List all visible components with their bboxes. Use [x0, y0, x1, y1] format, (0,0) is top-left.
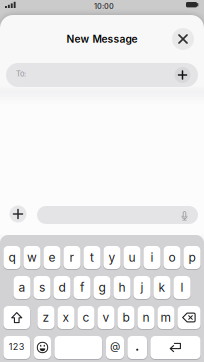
staticText: q: [8, 250, 15, 265]
button[interactable]: i: [143, 246, 160, 269]
button[interactable]: Numbers: [3, 336, 30, 359]
button[interactable]: s: [33, 276, 50, 299]
button[interactable]: h: [113, 276, 130, 299]
staticText: i: [150, 250, 153, 265]
button[interactable]: Apps: [9, 205, 26, 222]
staticText: o: [168, 250, 175, 265]
staticText: j: [140, 280, 143, 295]
button[interactable]: o: [163, 246, 180, 269]
staticText: p: [188, 250, 195, 265]
button[interactable]: q: [3, 246, 20, 269]
button[interactable]: n: [137, 306, 154, 329]
staticText: w: [27, 250, 37, 265]
button[interactable]: Delete: [177, 306, 200, 329]
staticText: c: [82, 310, 89, 325]
button[interactable]: c: [77, 306, 94, 329]
staticText: t: [90, 250, 94, 265]
button[interactable]: f: [73, 276, 90, 299]
staticText: a: [18, 280, 25, 295]
staticText: k: [158, 280, 165, 295]
staticText: r: [69, 250, 74, 265]
button[interactable]: Space: [54, 336, 102, 359]
button[interactable]: Close: [172, 28, 194, 50]
staticText: z: [42, 310, 49, 325]
staticText: h: [118, 280, 125, 295]
button[interactable]: u: [123, 246, 140, 269]
button[interactable]: t: [83, 246, 100, 269]
button[interactable]: Emoji: [34, 336, 51, 359]
button[interactable]: k: [153, 276, 170, 299]
staticText: x: [62, 310, 69, 325]
button[interactable]: m: [157, 306, 174, 329]
staticText: u: [128, 250, 135, 265]
button[interactable]: g: [93, 276, 110, 299]
button[interactable]: Return: [150, 336, 200, 359]
staticText: f: [80, 280, 84, 295]
button[interactable]: v: [97, 306, 114, 329]
button[interactable]: l: [173, 276, 190, 299]
button[interactable]: w: [23, 246, 40, 269]
button[interactable]: e: [43, 246, 60, 269]
button[interactable]: j: [133, 276, 150, 299]
staticText: 10:00: [94, 2, 114, 11]
button[interactable]: a: [13, 276, 30, 299]
staticText: m: [160, 310, 171, 325]
staticText: s: [39, 280, 45, 295]
button[interactable]: d: [53, 276, 70, 299]
button[interactable]: Shift: [3, 306, 30, 329]
staticText: e: [48, 250, 55, 265]
staticText: g: [98, 280, 105, 295]
button[interactable]: Add contact: [174, 67, 190, 83]
button[interactable]: .: [127, 336, 147, 359]
button[interactable]: x: [57, 306, 74, 329]
button[interactable]: p: [183, 246, 200, 269]
staticText: d: [58, 280, 65, 295]
staticText: y: [108, 250, 115, 265]
button[interactable]: Message field: [37, 206, 198, 224]
staticText: l: [180, 280, 183, 295]
button[interactable]: y: [103, 246, 120, 269]
staticText: b: [122, 310, 129, 325]
button[interactable]: @: [106, 336, 124, 359]
button[interactable]: r: [63, 246, 80, 269]
button[interactable]: b: [117, 306, 134, 329]
staticText: New Message: [66, 33, 137, 45]
staticText: @: [110, 340, 120, 352]
staticText: 123: [9, 341, 25, 352]
staticText: v: [102, 310, 109, 325]
staticText: n: [142, 310, 149, 325]
button[interactable]: z: [37, 306, 54, 329]
staticText: To:: [16, 69, 26, 78]
